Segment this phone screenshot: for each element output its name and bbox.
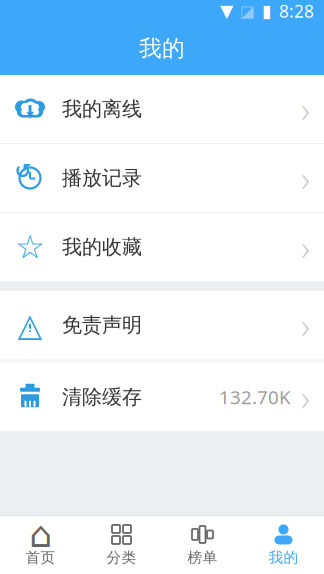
button[interactable]: 分类 <box>81 516 162 574</box>
staticText: ⌂ <box>29 514 52 555</box>
staticText: 132.70K <box>219 385 291 409</box>
staticText: ▮ <box>262 1 272 21</box>
staticText: 分类 <box>106 548 136 566</box>
button[interactable]: 我的 <box>243 516 324 574</box>
staticText: ↺ <box>14 160 31 182</box>
staticText: ◪ <box>240 2 255 20</box>
button[interactable]: △ <box>0 291 324 359</box>
button[interactable]: 清除缓存 <box>0 363 324 431</box>
staticText: 播放记录 <box>62 166 142 190</box>
staticText: › <box>301 374 310 420</box>
staticText: 首页 <box>25 548 55 566</box>
staticText: 8:28 <box>279 0 314 22</box>
staticText: △ <box>17 307 42 343</box>
staticText: 清除缓存 <box>62 385 142 409</box>
button[interactable]: ▼ <box>0 75 324 143</box>
staticText: ▼ <box>26 109 33 120</box>
button[interactable]: ⌂ <box>0 516 81 574</box>
button[interactable]: 榜单 <box>162 516 243 574</box>
staticText: › <box>301 302 310 348</box>
staticText: 榜单 <box>187 548 217 566</box>
staticText: › <box>301 224 310 270</box>
staticText: 我的 <box>268 548 298 566</box>
staticText: 我的离线 <box>62 97 142 121</box>
staticText: › <box>301 155 310 201</box>
staticText: 我的收藏 <box>62 235 142 259</box>
staticText: 免责声明 <box>62 313 142 337</box>
staticText: › <box>301 86 310 132</box>
staticText: ▼ <box>220 1 233 21</box>
button[interactable]: ↺ <box>0 144 324 212</box>
staticText: ☆ <box>15 228 45 266</box>
staticText: 我的 <box>139 35 185 62</box>
button[interactable]: ☆ <box>0 213 324 281</box>
